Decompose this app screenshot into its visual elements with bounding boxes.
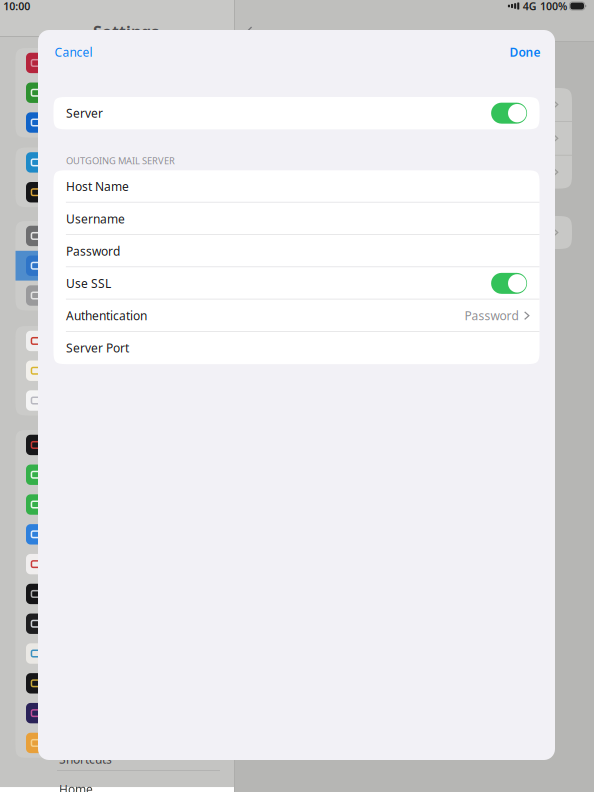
button[interactable]: Server Port [53,332,539,364]
staticText: OUTGOING MAIL SERVER [66,154,175,167]
button[interactable]: Cancel [46,39,100,65]
button[interactable]: Done [495,39,549,65]
staticText: Use SSL [66,275,111,291]
staticText: Done [509,44,540,60]
button[interactable]: Use SSL [53,267,539,299]
staticText: 10:00 [3,0,30,13]
staticText: Password [464,308,518,324]
staticText: Password [66,243,120,259]
button[interactable]: Username [53,203,539,235]
staticText: Server [66,105,103,121]
staticText: Cancel [54,44,92,60]
staticText: Settings [93,21,159,42]
staticText: Username [66,211,125,227]
staticText: Shortcuts [59,751,112,767]
staticText: Server Port [66,340,129,356]
staticText: Home [59,781,93,792]
staticText: 100% [540,0,567,13]
button[interactable]: Host Name [53,170,539,203]
staticText: 4G [523,0,537,13]
staticText: Authentication [66,308,147,324]
staticText: Host Name [66,178,129,194]
staticText: Account [389,25,450,44]
button[interactable]: Server [53,97,539,129]
button[interactable]: Authentication [53,299,539,332]
staticText: Mail [259,26,284,44]
button[interactable]: Password [53,235,539,267]
